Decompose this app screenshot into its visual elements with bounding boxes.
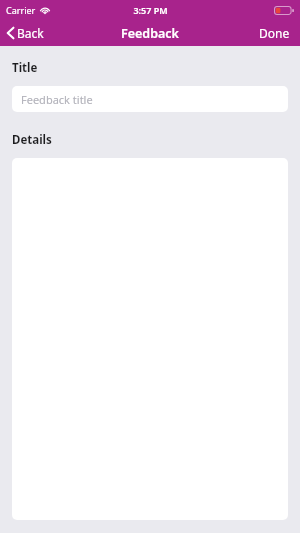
staticText: Details: [12, 132, 52, 148]
staticText: Back: [17, 25, 44, 41]
button[interactable]: Feedback title: [12, 86, 288, 112]
staticText: Feedback title: [21, 92, 93, 107]
staticText: Done: [259, 25, 290, 41]
button[interactable]: Back: [0, 20, 52, 46]
button[interactable]: Done: [249, 20, 300, 46]
staticText: Carrier: [6, 4, 36, 16]
staticText: Title: [12, 60, 38, 76]
staticText: Feedback: [121, 25, 179, 42]
staticText: 3:57 PM: [133, 4, 168, 16]
